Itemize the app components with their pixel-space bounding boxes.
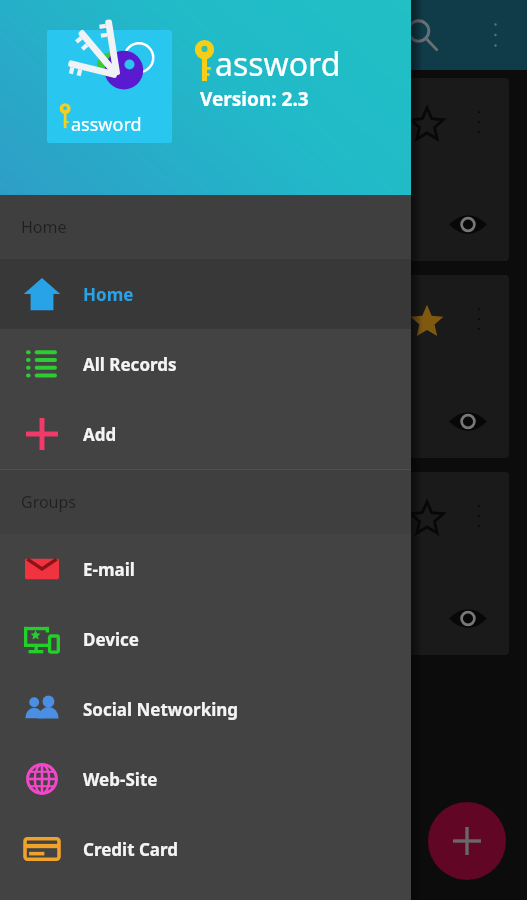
button[interactable]: Favourite xyxy=(18,472,509,655)
button[interactable]: Show password xyxy=(449,409,487,434)
staticText: All Records xyxy=(83,353,177,376)
staticText: assword xyxy=(71,112,142,137)
button[interactable]: Home xyxy=(0,259,411,329)
button[interactable]: Web-Site xyxy=(0,744,411,814)
button[interactable]: More options xyxy=(475,305,483,333)
staticText: Home xyxy=(83,283,134,306)
staticText: Add xyxy=(83,423,117,446)
button[interactable]: Favourite xyxy=(18,78,509,261)
button[interactable]: All Records xyxy=(0,329,411,399)
button[interactable]: Add xyxy=(0,399,411,469)
staticText: assword xyxy=(215,42,341,86)
staticText: Version: 2.3 xyxy=(200,86,309,112)
button[interactable]: More options xyxy=(475,502,483,530)
button[interactable]: Device xyxy=(0,604,411,674)
button[interactable]: Favourite xyxy=(409,303,445,339)
staticText: Credit Card xyxy=(83,838,179,861)
button[interactable]: Show password xyxy=(449,606,487,631)
button[interactable]: More options xyxy=(491,20,500,50)
button[interactable]: More options xyxy=(475,108,483,136)
button[interactable]: Favourite xyxy=(409,106,445,142)
staticText: Web-Site xyxy=(83,768,158,791)
button[interactable]: Add record xyxy=(428,802,506,880)
button[interactable]: Favourite xyxy=(409,500,445,536)
button[interactable]: E-mail xyxy=(0,534,411,604)
button[interactable]: Social Networking xyxy=(0,674,411,744)
staticText: Device xyxy=(83,628,139,651)
staticText: Social Networking xyxy=(83,698,239,721)
button[interactable]: Credit Card xyxy=(0,814,411,884)
button[interactable]: Search xyxy=(405,18,439,52)
staticText: E-mail xyxy=(83,558,135,581)
staticText: Groups xyxy=(21,491,77,513)
button[interactable]: Favourite xyxy=(18,275,509,458)
button[interactable]: Show password xyxy=(449,212,487,237)
staticText: Home xyxy=(21,216,67,238)
